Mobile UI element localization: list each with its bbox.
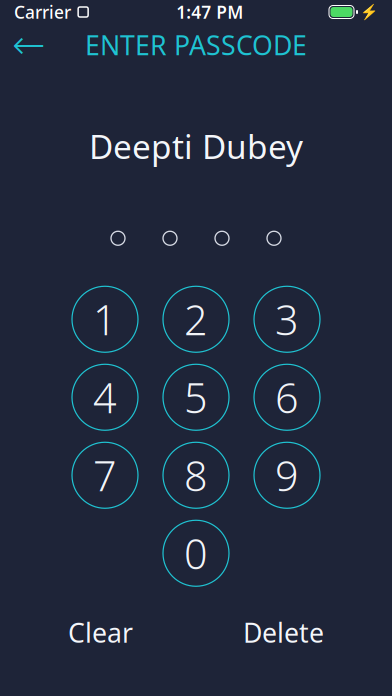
button[interactable]: 2 [163,286,229,352]
button[interactable]: 5 [163,364,229,430]
staticText: 2 [184,292,208,347]
staticText: 1:47 PM [176,0,243,23]
staticText: Carrier [14,0,71,23]
staticText: ⚡ [360,4,378,20]
button[interactable]: 3 [254,286,320,352]
button[interactable]: 6 [254,364,320,430]
staticText: 0 [184,526,208,581]
button[interactable]: Back [6,25,52,65]
staticText: ← [12,22,46,68]
staticText: 1 [93,292,117,347]
staticText: 3 [275,292,299,347]
button[interactable]: 4 [72,364,138,430]
staticText: Deepti Dubey [89,124,303,168]
button[interactable]: 7 [72,442,138,508]
staticText: 8 [184,448,208,503]
staticText: 6 [275,370,299,425]
staticText: Delete [243,615,324,650]
button[interactable]: Delete [233,607,334,658]
button[interactable]: 1 [72,286,138,352]
staticText [71,0,76,23]
staticText: 9 [275,448,299,503]
staticText: 7 [93,448,117,503]
staticText: ENTER PASSCODE [85,27,307,63]
staticText: Clear [68,615,133,650]
button[interactable]: 0 [163,520,229,586]
staticText: 4 [93,370,117,425]
staticText: 5 [184,370,208,425]
button[interactable]: Clear [58,607,143,658]
button[interactable]: 8 [163,442,229,508]
button[interactable]: 9 [254,442,320,508]
